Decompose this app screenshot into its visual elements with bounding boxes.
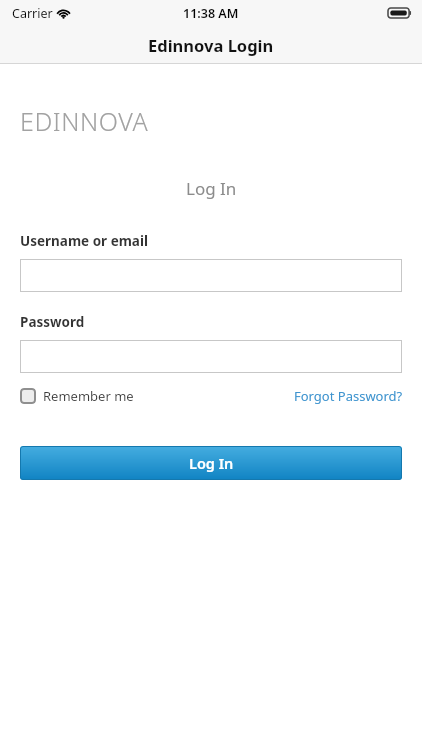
button[interactable]: Text input field bbox=[20, 259, 402, 292]
staticText: Username or email bbox=[20, 232, 149, 250]
staticText: 11:38 AM bbox=[183, 5, 239, 22]
staticText: Carrier bbox=[12, 5, 53, 22]
staticText: Log In bbox=[189, 453, 234, 473]
button[interactable]: Text input field bbox=[20, 340, 402, 373]
button[interactable]: Forgot Password? bbox=[294, 387, 403, 405]
button[interactable]: Log In bbox=[20, 446, 402, 480]
staticText: Password bbox=[20, 313, 85, 331]
staticText: Edinnova Login bbox=[148, 34, 274, 56]
staticText: Log In bbox=[186, 177, 237, 200]
button[interactable]: Remember me bbox=[20, 387, 134, 405]
staticText: Remember me bbox=[43, 387, 134, 405]
staticText: Forgot Password? bbox=[294, 387, 403, 405]
staticText: EDINNOVA bbox=[20, 104, 149, 138]
